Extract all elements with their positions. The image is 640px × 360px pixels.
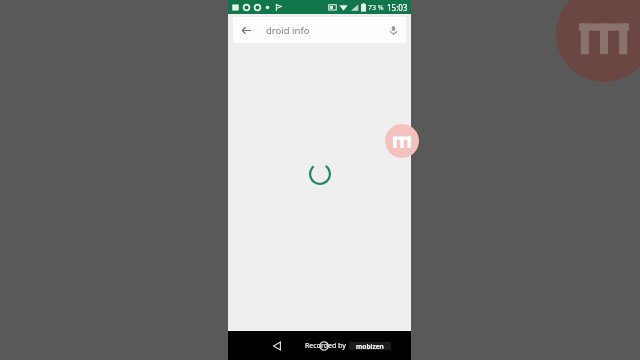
button[interactable]: Back xyxy=(233,17,259,43)
button[interactable]: Back xyxy=(233,17,406,43)
staticText: 15:03 xyxy=(387,2,408,13)
button[interactable]: Back xyxy=(266,335,288,357)
staticText: mobizen xyxy=(356,342,384,350)
button[interactable]: Home xyxy=(313,335,335,357)
staticText: 73 % xyxy=(368,3,384,13)
staticText: droid info xyxy=(266,24,310,37)
staticText: Recorded by xyxy=(305,341,346,351)
button[interactable]: Voice search xyxy=(380,17,406,43)
